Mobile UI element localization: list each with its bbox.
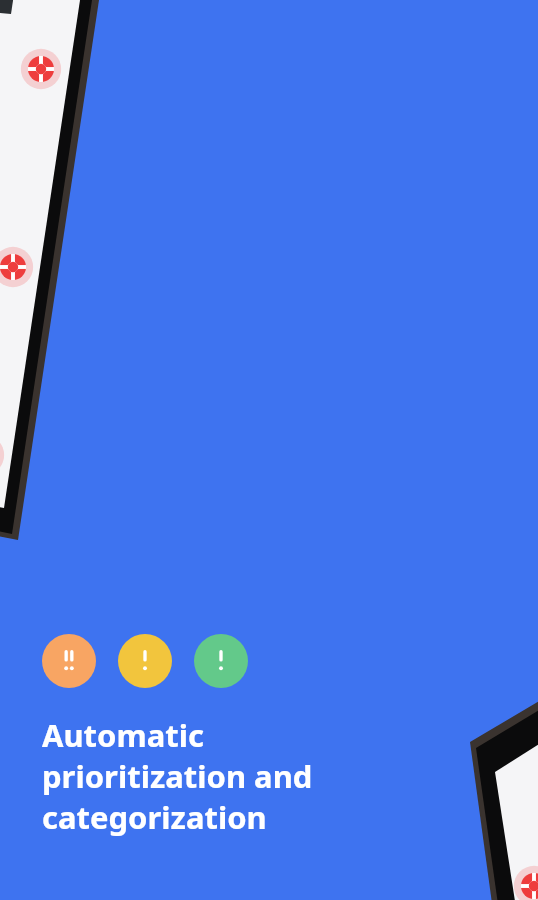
staticText: Automatic prioritization and categorizat… <box>42 714 313 838</box>
button[interactable]: Urgent priority <box>42 634 96 688</box>
button[interactable]: Medium priority <box>118 634 172 688</box>
button[interactable]: Low priority <box>194 634 248 688</box>
